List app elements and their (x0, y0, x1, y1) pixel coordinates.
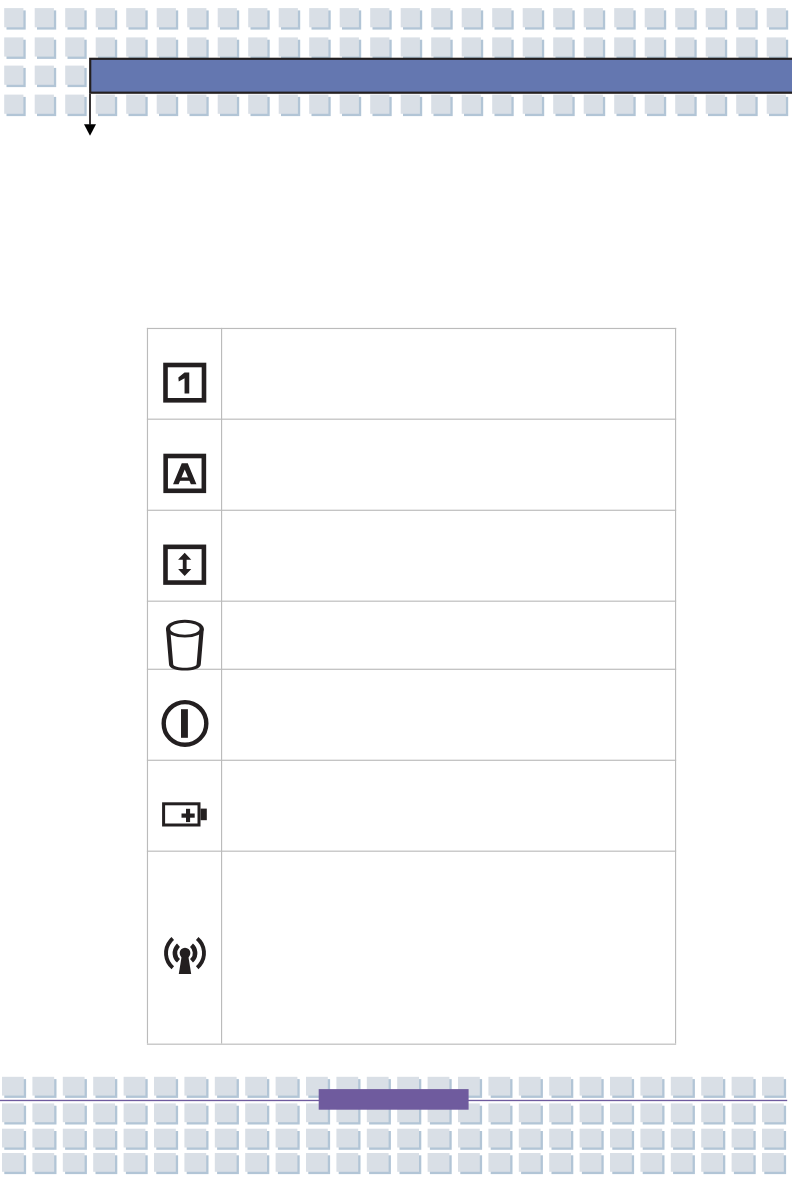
button[interactable]: Toner container (146, 600, 674, 668)
button[interactable]: Fit to page height (146, 509, 674, 600)
button[interactable]: Power switch (146, 668, 674, 759)
button[interactable]: Automatic paper size (146, 418, 674, 509)
button[interactable]: Printer control panel banner (87, 57, 792, 94)
button[interactable]: Single copy (146, 327, 674, 418)
button[interactable]: Wireless network (146, 850, 674, 1043)
button[interactable]: Charge battery (146, 759, 674, 850)
button[interactable]: Page position indicator (318, 1089, 469, 1110)
